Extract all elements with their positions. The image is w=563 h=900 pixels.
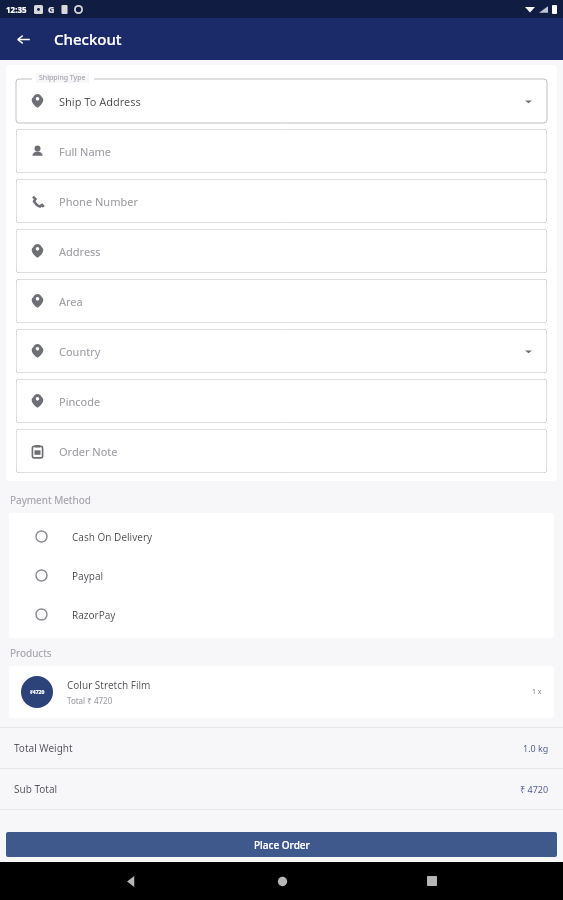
- staticText: Cash On Delivery: [72, 530, 153, 544]
- staticText: Country: [59, 344, 101, 359]
- button[interactable]: ₹4720: [9, 666, 554, 718]
- button[interactable]: Area: [16, 279, 547, 323]
- staticText: Phone Number: [59, 194, 138, 209]
- staticText: Pincode: [59, 394, 101, 409]
- staticText: Ship To Address: [59, 94, 141, 109]
- button[interactable]: Phone Number: [16, 179, 547, 223]
- staticText: ₹4720: [30, 689, 45, 696]
- button[interactable]: Home: [263, 862, 301, 900]
- staticText: G: [48, 3, 55, 15]
- staticText: Full Name: [59, 144, 112, 159]
- staticText: RazorPay: [72, 608, 116, 622]
- staticText: 1 x: [532, 687, 542, 697]
- button[interactable]: Full Name: [16, 129, 547, 173]
- staticText: 12:35: [6, 4, 27, 15]
- staticText: Checkout: [54, 29, 122, 49]
- button[interactable]: Recents: [413, 862, 451, 900]
- staticText: Total ₹ 4720: [67, 695, 113, 706]
- staticText: Area: [59, 294, 83, 309]
- staticText: Place Order: [254, 838, 310, 852]
- staticText: Sub Total: [14, 782, 58, 796]
- button[interactable]: Address: [16, 229, 547, 273]
- staticText: Payment Method: [10, 493, 91, 507]
- staticText: Order Note: [59, 444, 118, 459]
- button[interactable]: Order Note: [16, 429, 547, 473]
- staticText: 1.0 kg: [523, 742, 549, 754]
- button[interactable]: Back: [8, 24, 38, 54]
- staticText: Shipping Type: [39, 73, 86, 83]
- button[interactable]: Back: [112, 862, 150, 900]
- button[interactable]: Shipping Type: [16, 73, 547, 123]
- button[interactable]: Cash On Delivery: [9, 517, 554, 556]
- staticText: Paypal: [72, 569, 104, 583]
- staticText: Products: [10, 646, 52, 660]
- staticText: Address: [59, 244, 101, 259]
- staticText: ₹ 4720: [520, 783, 549, 795]
- button[interactable]: RazorPay: [9, 595, 554, 634]
- button[interactable]: Pincode: [16, 379, 547, 423]
- button[interactable]: Country: [16, 329, 547, 373]
- staticText: Total Weight: [14, 741, 73, 755]
- staticText: Colur Stretch Film: [67, 678, 151, 692]
- button[interactable]: Paypal: [9, 556, 554, 595]
- button[interactable]: Place Order: [6, 832, 557, 857]
